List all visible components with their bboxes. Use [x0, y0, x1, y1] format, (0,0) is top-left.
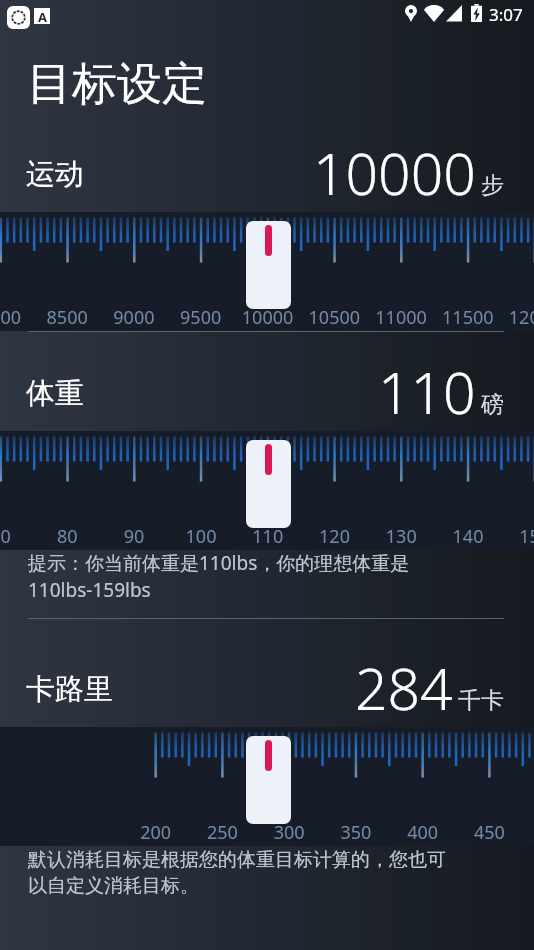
- staticText: 千卡: [458, 686, 504, 715]
- button[interactable]: Ruler picker: [0, 727, 534, 846]
- staticText: 284: [355, 649, 453, 711]
- staticText: 提示：你当前体重是110lbs，你的理想体重是 110lbs-159lbs: [28, 550, 410, 603]
- button[interactable]: Selected value: [246, 440, 291, 528]
- staticText: 110: [378, 353, 476, 415]
- staticText: 默认消耗目标是根据您的体重目标计算的，您也可 以自定义消耗目标。: [28, 848, 446, 898]
- button[interactable]: Ruler picker: [0, 212, 534, 331]
- button[interactable]: Selected value: [246, 221, 291, 309]
- staticText: 3:07: [489, 3, 523, 26]
- button[interactable]: Ruler picker: [0, 431, 534, 550]
- staticText: A: [38, 8, 47, 24]
- button[interactable]: Selected value: [246, 736, 291, 824]
- staticText: 运动: [26, 156, 84, 193]
- staticText: 卡路里: [26, 671, 113, 708]
- staticText: 10000: [313, 134, 476, 196]
- staticText: 目标设定: [27, 56, 207, 113]
- staticText: 步: [481, 171, 504, 200]
- staticText: 磅: [481, 390, 504, 419]
- staticText: 体重: [26, 375, 84, 412]
